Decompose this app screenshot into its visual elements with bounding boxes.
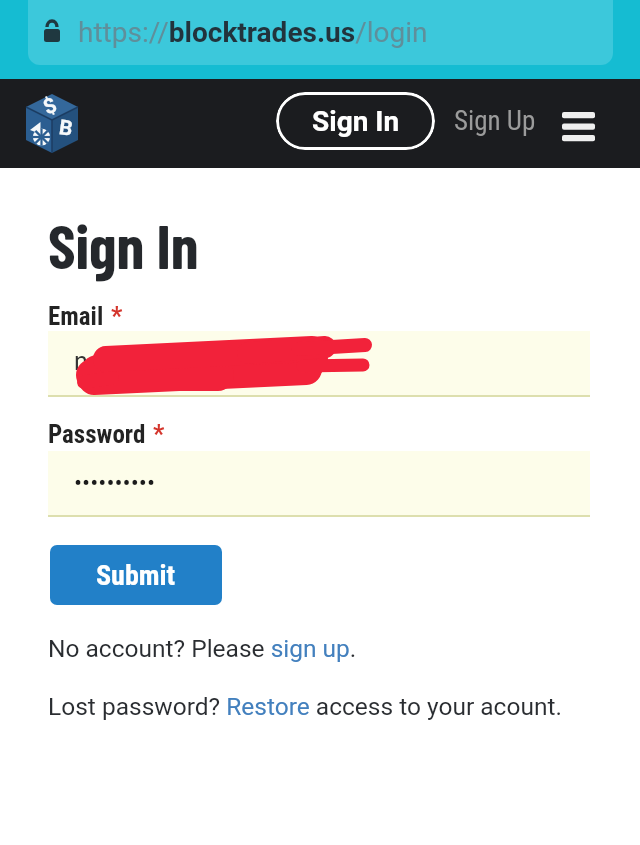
staticText: Submit xyxy=(96,559,176,592)
staticText: Sign In xyxy=(48,207,199,281)
staticText: B xyxy=(57,115,75,142)
staticText: * xyxy=(111,302,123,331)
button[interactable]: n xyxy=(48,331,590,397)
button[interactable]: •••••••••• xyxy=(48,451,590,517)
staticText: Sign In xyxy=(312,105,400,138)
staticText: Password xyxy=(48,420,146,449)
button[interactable]: Sign Up xyxy=(454,105,536,137)
staticText: * xyxy=(153,420,165,449)
button[interactable]: Sign In xyxy=(276,92,435,150)
button[interactable]: $ xyxy=(26,94,78,153)
staticText: n xyxy=(74,347,88,376)
staticText: Email xyxy=(48,302,104,331)
button[interactable]: No account? Please sign up. xyxy=(48,634,357,663)
button[interactable] xyxy=(558,107,598,141)
button[interactable]: Submit xyxy=(50,545,222,605)
staticText: https://blocktrades.us/login xyxy=(78,16,428,49)
button[interactable]: https://blocktrades.us/login xyxy=(0,0,640,79)
staticText: •••••••••• xyxy=(74,469,155,497)
staticText: Sign Up xyxy=(454,105,536,137)
staticText: $ xyxy=(39,92,61,120)
button[interactable]: Lost password? Restore access to your ac… xyxy=(48,692,562,721)
